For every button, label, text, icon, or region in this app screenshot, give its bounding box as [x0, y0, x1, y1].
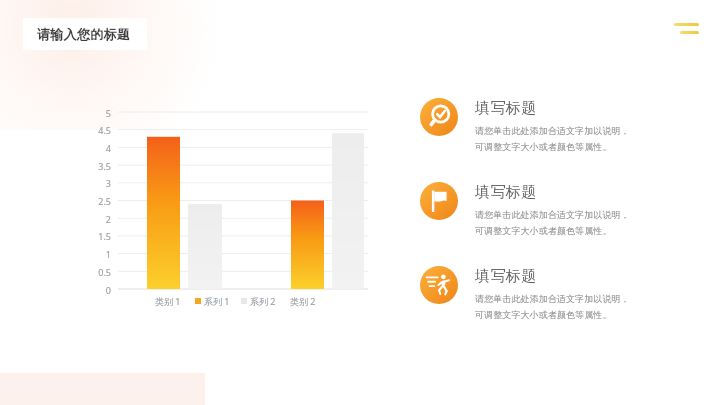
button[interactable]: Search [420, 98, 692, 152]
staticText: 4.5 [98, 124, 111, 136]
staticText: 填写标题 [475, 99, 537, 118]
staticText: 3.5 [98, 160, 111, 172]
staticText: 填写标题 [475, 267, 537, 286]
button[interactable]: 请输入您的标题 [23, 18, 147, 50]
staticText: 请您单击此处添加合适文字加以说明， [475, 209, 630, 220]
other: Run [420, 266, 458, 304]
staticText: 2.5 [98, 195, 111, 207]
staticText: 0 [105, 284, 111, 296]
button[interactable]: Menu [668, 16, 704, 42]
staticText: 系列 1 [204, 295, 230, 307]
staticText: 类别 2 [290, 295, 316, 307]
staticText: 5 [105, 107, 111, 119]
staticText: 4 [105, 142, 111, 154]
button[interactable]: Goal [420, 182, 692, 236]
staticText: 请您单击此处添加合适文字加以说明， [475, 125, 630, 136]
staticText: 类别 1 [155, 295, 181, 307]
staticText: 可调整文字大小或者颜色等属性。 [475, 225, 612, 236]
staticText: 可调整文字大小或者颜色等属性。 [475, 141, 612, 152]
staticText: 请您单击此处添加合适文字加以说明， [475, 293, 630, 304]
staticText: 3 [105, 177, 111, 189]
staticText: 系列 2 [250, 295, 276, 307]
other: Search [420, 98, 458, 136]
staticText: 1.5 [98, 230, 111, 242]
staticText: 请输入您的标题 [37, 26, 131, 42]
staticText: 可调整文字大小或者颜色等属性。 [475, 309, 612, 320]
other: Goal [420, 182, 458, 220]
staticText: 1 [105, 248, 111, 260]
button[interactable]: Run [420, 266, 692, 320]
staticText: 填写标题 [475, 183, 537, 202]
staticText: 2 [105, 213, 111, 225]
staticText: 0.5 [98, 266, 111, 278]
